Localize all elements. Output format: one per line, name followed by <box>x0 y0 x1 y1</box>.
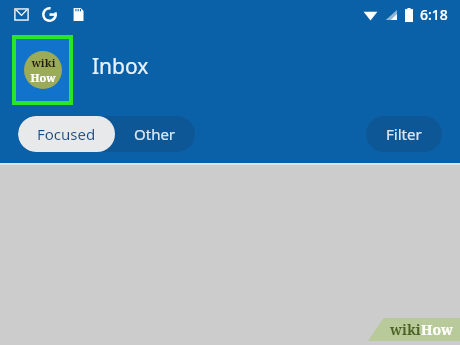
button[interactable]: Other <box>115 116 195 152</box>
staticText: How <box>30 70 56 85</box>
button[interactable]: Account <box>16 39 69 101</box>
staticText: Inbox <box>92 52 149 81</box>
button[interactable]: Filter <box>366 116 442 152</box>
staticText: 6:18 <box>420 5 448 24</box>
staticText: Focused <box>37 124 96 144</box>
staticText: How <box>421 320 454 339</box>
staticText: Filter <box>386 124 422 144</box>
staticText: wiki <box>390 320 421 339</box>
staticText: Other <box>134 124 176 144</box>
staticText: wiki <box>31 55 56 70</box>
button[interactable]: Focused <box>18 116 115 152</box>
